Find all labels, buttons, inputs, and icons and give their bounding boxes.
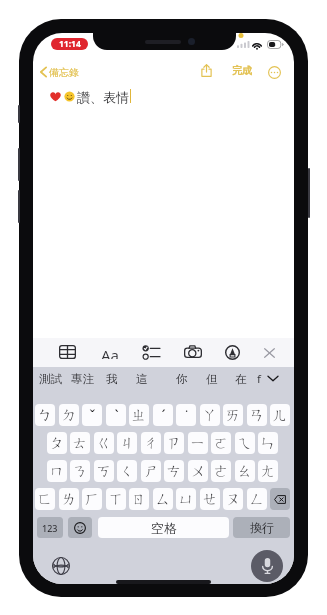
button[interactable]: 但 [201, 367, 223, 390]
staticText: ㄤ [260, 462, 276, 481]
button[interactable]: Markup [220, 340, 245, 365]
button[interactable]: 備忘錄 [36, 62, 85, 82]
staticText: ˋ [114, 405, 119, 425]
button[interactable]: 這 [131, 367, 153, 390]
button[interactable]: ㄤ [258, 460, 278, 482]
button[interactable]: ㄆ [47, 432, 67, 454]
button[interactable]: 換行 [233, 517, 290, 538]
staticText: ㄐ [119, 434, 135, 453]
staticText: ㄦ [272, 406, 288, 425]
button[interactable]: Text format [96, 340, 125, 364]
button[interactable]: More options [265, 62, 284, 82]
button[interactable]: ㄦ [270, 404, 290, 426]
button[interactable]: ㄐ [117, 432, 137, 454]
staticText: ㄧ [190, 434, 206, 453]
button[interactable]: 完成 [226, 62, 257, 79]
button[interactable]: ㄓ [129, 404, 149, 426]
staticText: 你 [176, 372, 188, 386]
button[interactable]: Table [54, 340, 81, 364]
staticText: 完成 [232, 64, 252, 77]
button[interactable]: ㄅ [35, 404, 55, 426]
button[interactable]: ㄢ [247, 404, 267, 426]
staticText: ㄑ [119, 462, 135, 481]
staticText: ㄨ [190, 462, 206, 481]
staticText: ㄙ [155, 490, 171, 509]
staticText: ˇ [89, 405, 96, 425]
staticText: ㄏ [84, 490, 100, 509]
staticText: ㄚ [202, 406, 218, 425]
button[interactable]: ㄡ [223, 488, 243, 510]
button[interactable]: ㄎ [94, 460, 114, 482]
staticText: ˙ [185, 405, 188, 425]
button[interactable]: ㄛ [211, 432, 231, 454]
button[interactable]: ˙ [176, 404, 196, 426]
button[interactable]: ˊ [153, 404, 173, 426]
button[interactable]: ㄌ [59, 488, 79, 510]
staticText: 空格 [151, 520, 177, 536]
button[interactable]: ㄨ [188, 460, 208, 482]
button[interactable]: ㄒ [106, 488, 126, 510]
button[interactable]: ㄩ [176, 488, 196, 510]
button[interactable]: ˋ [106, 404, 126, 426]
button[interactable]: Close [258, 342, 281, 364]
button[interactable]: ㄍ [94, 432, 114, 454]
staticText: ㄊ [72, 434, 88, 453]
button[interactable]: Dictation [251, 550, 283, 582]
button[interactable]: ㄞ [223, 404, 243, 426]
button[interactable]: ㄥ [247, 488, 267, 510]
button[interactable]: ㄇ [47, 460, 67, 482]
button[interactable]: ㄧ [188, 432, 208, 454]
staticText: ㄥ [249, 490, 265, 509]
button[interactable]: ㄘ [164, 460, 184, 482]
staticText: ˊ [161, 405, 166, 425]
button[interactable]: Delete [270, 488, 290, 510]
button[interactable]: Checklist [137, 340, 165, 365]
staticText: ㄍ [96, 434, 112, 453]
button[interactable]: ㄖ [129, 488, 149, 510]
button[interactable]: Switch keyboard language [48, 553, 74, 579]
button[interactable]: 空格 [98, 517, 229, 538]
button[interactable]: Emoji [68, 517, 92, 538]
staticText: ㄆ [49, 434, 65, 453]
staticText: ㄗ [166, 434, 182, 453]
button[interactable]: ㄉ [59, 404, 79, 426]
button[interactable]: ㄣ [258, 432, 278, 454]
staticText: ㄓ [131, 406, 147, 425]
button[interactable]: ㄋ [70, 460, 90, 482]
staticText: ㄩ [178, 490, 194, 509]
staticText: 換行 [250, 520, 274, 535]
button[interactable]: ㄏ [82, 488, 102, 510]
button[interactable]: ㄠ [235, 460, 255, 482]
button[interactable]: ㄜ [211, 460, 231, 482]
button[interactable]: 在 [230, 367, 252, 390]
button[interactable]: Camera [179, 340, 207, 364]
button[interactable]: 專注 [66, 367, 99, 390]
staticText: 我 [106, 372, 118, 386]
button[interactable]: ㄔ [141, 432, 161, 454]
staticText: 這 [136, 372, 148, 386]
button[interactable]: ㄕ [141, 460, 161, 482]
staticText: 測試 [39, 372, 62, 386]
button[interactable]: f [252, 367, 266, 390]
button[interactable]: ㄙ [153, 488, 173, 510]
staticText: ㄜ [213, 462, 229, 481]
button[interactable]: ㄟ [235, 432, 255, 454]
staticText: ㄟ [237, 434, 253, 453]
button[interactable]: ㄝ [200, 488, 220, 510]
button[interactable]: 我 [101, 367, 123, 390]
button[interactable]: Expand suggestions [262, 367, 284, 390]
button[interactable]: ㄈ [35, 488, 55, 510]
button[interactable]: ㄗ [164, 432, 184, 454]
staticText: Aa [101, 345, 120, 359]
button[interactable]: ㄚ [200, 404, 220, 426]
button[interactable]: Share [196, 60, 217, 80]
staticText: ㄠ [237, 462, 253, 481]
button[interactable]: 你 [171, 367, 193, 390]
button[interactable]: ㄊ [70, 432, 90, 454]
staticText: 專注 [71, 372, 94, 386]
button[interactable]: 123 [37, 517, 63, 538]
button[interactable]: ㄑ [117, 460, 137, 482]
button[interactable]: ˇ [82, 404, 102, 426]
button[interactable]: 測試 [34, 367, 67, 390]
staticText: ㄎ [96, 462, 112, 481]
